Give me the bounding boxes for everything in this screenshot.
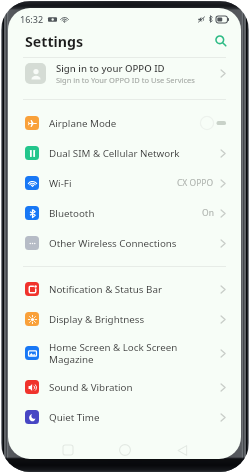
button[interactable]: Recents	[57, 439, 79, 459]
button[interactable]: Dual SIM & Cellular Network	[8, 138, 241, 168]
button[interactable]: Notification & Status Bar	[8, 274, 241, 304]
staticText: Sign in to Your OPPO ID to Use Services	[56, 75, 195, 85]
button[interactable]: Back	[171, 439, 193, 459]
staticText: CX OPPO	[177, 177, 214, 189]
staticText: Notification & Status Bar	[49, 283, 162, 296]
staticText: 16:32	[20, 13, 44, 25]
button[interactable]: Other Wireless Connections	[8, 228, 241, 258]
staticText: Dual SIM & Cellular Network	[49, 147, 180, 160]
staticText: On	[202, 207, 214, 219]
staticText: Home Screen & Lock Screen Magazine	[49, 341, 178, 366]
button[interactable]: Sign in to your OPPO ID	[8, 58, 241, 89]
staticText: Settings	[25, 32, 84, 51]
button[interactable]: Home Screen & Lock Screen Magazine	[8, 334, 241, 372]
staticText: Airplane Mode	[49, 117, 117, 130]
button[interactable]: Airplane Mode	[8, 108, 241, 138]
staticText: Bluetooth	[49, 207, 95, 220]
staticText: Other Wireless Connections	[49, 237, 177, 250]
button[interactable]: Home	[114, 439, 136, 459]
staticText: Display & Brightness	[49, 313, 145, 326]
button[interactable]: Display & Brightness	[8, 304, 241, 334]
button[interactable]: Search	[212, 32, 230, 50]
staticText: Quiet Time	[49, 411, 100, 424]
button[interactable]: Wi-Fi	[8, 168, 241, 198]
button[interactable]: Airplane Mode toggle	[200, 116, 226, 130]
staticText: Sign in to your OPPO ID	[56, 62, 165, 75]
button[interactable]: Sound & Vibration	[8, 372, 241, 402]
staticText: Sound & Vibration	[49, 381, 133, 394]
button[interactable]: Quiet Time	[8, 402, 241, 432]
staticText: Wi-Fi	[49, 177, 72, 190]
button[interactable]: Bluetooth	[8, 198, 241, 228]
